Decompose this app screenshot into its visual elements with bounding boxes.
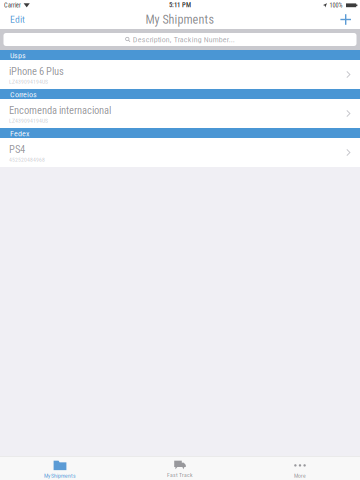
button[interactable]: PS4 bbox=[0, 138, 360, 167]
staticText: iPhone 6 Plus bbox=[9, 65, 64, 78]
button[interactable]: More bbox=[240, 456, 360, 480]
button[interactable]: iPhone 6 Plus bbox=[0, 60, 360, 89]
staticText: Encomenda internacional bbox=[9, 104, 111, 117]
button[interactable]: Fast Track bbox=[120, 456, 240, 480]
staticText: 5:11 PM bbox=[169, 1, 191, 9]
staticText: PS4 bbox=[9, 143, 25, 156]
staticText: My Shipments bbox=[44, 472, 76, 479]
staticText: Correios bbox=[10, 90, 37, 99]
staticText: Fast Track bbox=[167, 472, 193, 478]
staticText: Usps bbox=[10, 51, 26, 60]
button[interactable]: Add shipment bbox=[331, 10, 360, 29]
button[interactable]: Description, Tracking Number... bbox=[3, 33, 356, 46]
staticText: Description, Tracking Number... bbox=[133, 35, 235, 44]
staticText: More bbox=[294, 472, 306, 479]
staticText: 452520484968 bbox=[9, 156, 45, 163]
staticText: 100% bbox=[329, 2, 342, 9]
staticText: LZ439094194US bbox=[9, 78, 48, 85]
staticText: Carrier bbox=[4, 2, 21, 9]
staticText: Edit bbox=[10, 14, 25, 25]
button[interactable]: Edit bbox=[0, 10, 34, 29]
staticText: LZ439094194US bbox=[9, 117, 48, 124]
button[interactable]: Encomenda internacional bbox=[0, 99, 360, 128]
staticText: Fedex bbox=[10, 129, 30, 138]
staticText: My Shipments bbox=[145, 12, 214, 27]
button[interactable]: My Shipments bbox=[0, 456, 120, 480]
